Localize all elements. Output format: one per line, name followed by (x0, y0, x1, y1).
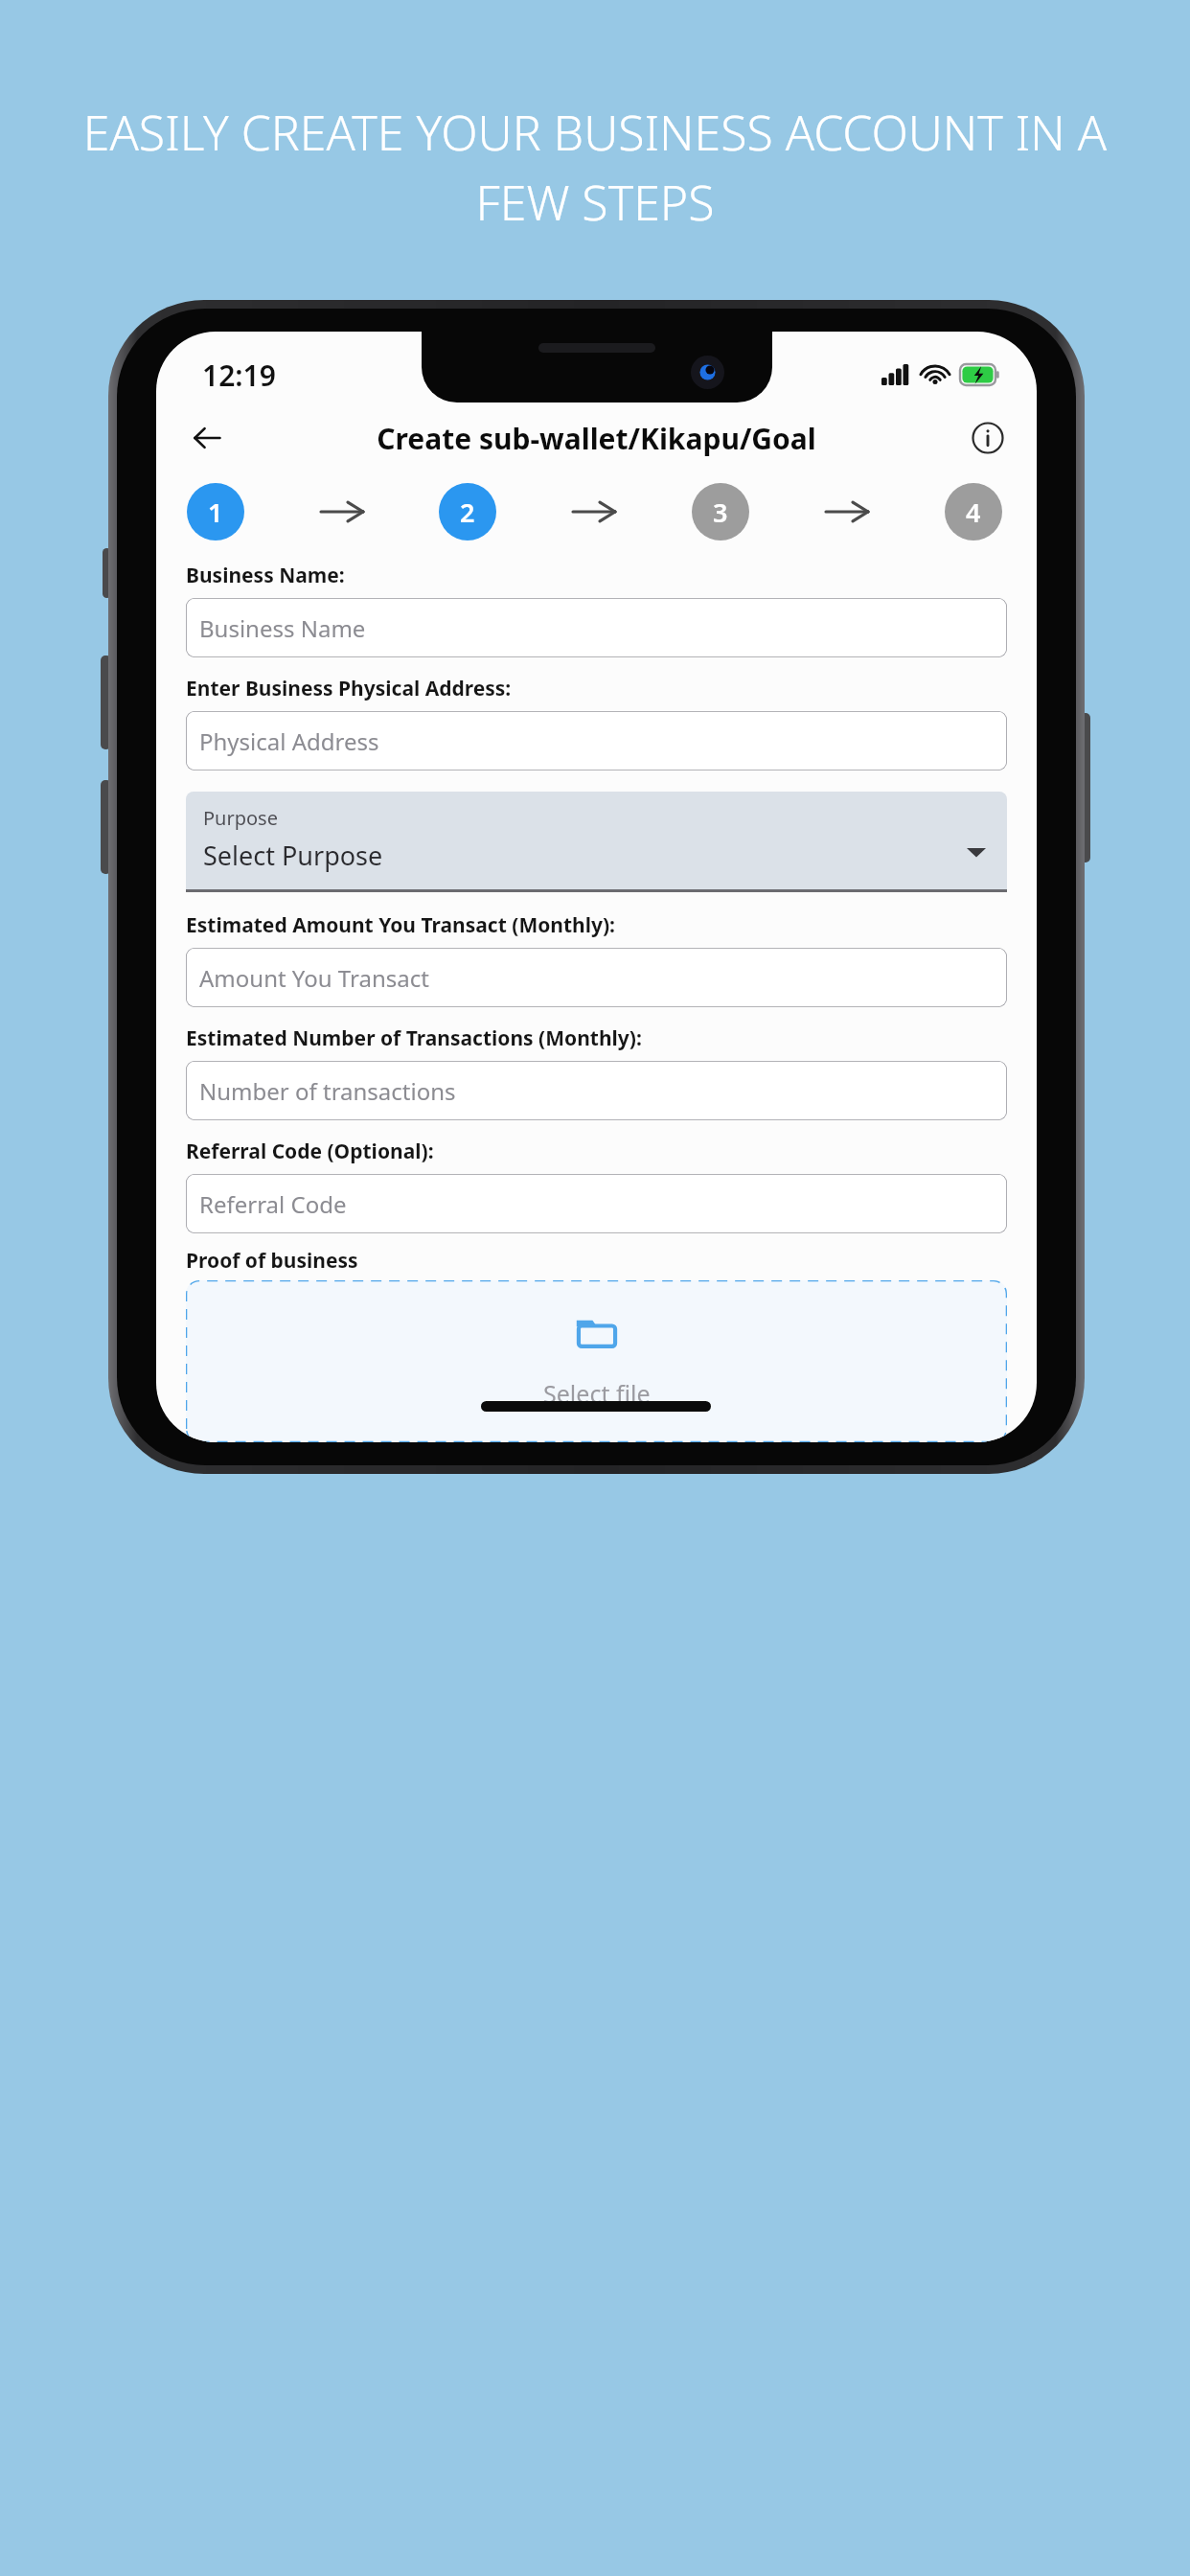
button[interactable]: Referral Code (186, 1174, 1007, 1233)
button[interactable]: Physical Address (186, 711, 1007, 770)
staticText: Business Name (199, 612, 366, 644)
staticText: Estimated Number of Transactions (Monthl… (186, 1024, 642, 1052)
staticText: Select file (543, 1377, 651, 1410)
staticText: Purpose (203, 805, 278, 831)
button[interactable]: Amount You Transact (186, 948, 1007, 1007)
staticText: 2 (460, 494, 475, 530)
staticText: Amount You Transact (199, 962, 429, 994)
staticText: Number of transactions (199, 1075, 456, 1107)
staticText: 1 (208, 494, 223, 530)
staticText: Referral Code (199, 1188, 347, 1220)
button[interactable]: Select file (186, 1280, 1007, 1442)
staticText: Referral Code (Optional): (186, 1138, 434, 1165)
staticText: Select Purpose (203, 838, 383, 873)
button[interactable]: Business Name (186, 598, 1007, 657)
staticText: Business Name: (186, 562, 345, 589)
staticText: EASILY CREATE YOUR BUSINESS ACCOUNT IN A… (44, 100, 1146, 235)
button[interactable]: Information (958, 408, 1018, 468)
button[interactable]: Number of transactions (186, 1061, 1007, 1120)
staticText: 4 (966, 494, 981, 530)
button[interactable]: 2 (439, 483, 496, 540)
staticText: Estimated Amount You Transact (Monthly): (186, 911, 615, 939)
staticText: Proof of business (186, 1247, 358, 1275)
staticText: Create sub-wallet/Kikapu/Goal (156, 419, 1037, 458)
button[interactable]: Back (177, 408, 237, 468)
button[interactable]: 3 (692, 483, 749, 540)
button[interactable]: 1 (187, 483, 244, 540)
button[interactable]: 4 (945, 483, 1002, 540)
staticText: Enter Business Physical Address: (186, 675, 512, 702)
staticText: Physical Address (199, 725, 379, 757)
staticText: 3 (713, 494, 728, 530)
button[interactable]: Purpose (186, 792, 1007, 892)
staticText: 12:19 (202, 356, 276, 395)
